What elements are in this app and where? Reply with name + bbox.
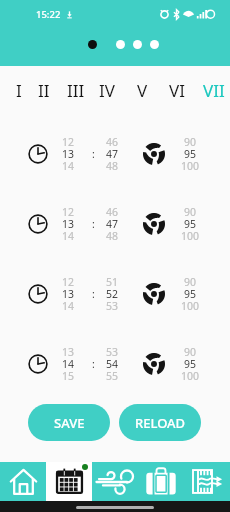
staticText: 14 — [62, 299, 75, 313]
button[interactable]: SAVE — [28, 404, 110, 441]
staticText: 52 — [106, 287, 119, 301]
button[interactable]: Filter — [184, 462, 230, 501]
staticText: II — [38, 79, 50, 102]
staticText: VI — [169, 79, 185, 102]
staticText: 46 — [106, 205, 119, 219]
staticText: 55 — [106, 369, 119, 383]
staticText: RELOAD — [135, 414, 186, 432]
staticText: 90 — [184, 205, 197, 219]
staticText: V — [137, 79, 148, 102]
staticText: SAVE — [54, 414, 85, 432]
staticText: 12 — [62, 275, 75, 289]
staticText: 15:22 — [36, 8, 61, 21]
staticText: 95 — [184, 357, 197, 371]
staticText: 54 — [106, 357, 119, 371]
staticText: : — [92, 357, 95, 371]
staticText: 13 — [62, 345, 75, 359]
staticText: 48 — [106, 159, 119, 173]
staticText: I — [16, 79, 22, 102]
staticText: 48 — [106, 229, 119, 243]
staticText: 12 — [62, 135, 75, 149]
button[interactable]: Home — [0, 462, 46, 501]
staticText: VII — [203, 79, 225, 102]
button[interactable]: Calendar — [46, 462, 92, 501]
staticText: III — [67, 79, 85, 102]
staticText: 95 — [184, 217, 197, 231]
button[interactable]: Air flow — [92, 462, 138, 501]
staticText: 12 — [62, 205, 75, 219]
button[interactable]: RELOAD — [119, 404, 201, 441]
staticText: 13 — [62, 217, 75, 231]
staticText: 53 — [106, 299, 119, 313]
staticText: 100 — [181, 299, 200, 313]
button[interactable]: V — [125, 74, 159, 106]
staticText: 47 — [106, 217, 119, 231]
staticText: 100 — [181, 229, 200, 243]
staticText: 15 — [62, 369, 75, 383]
button[interactable]: 12 — [0, 119, 230, 189]
button[interactable]: III — [60, 74, 91, 106]
button[interactable]: 12 — [0, 189, 230, 259]
staticText: 46 — [106, 135, 119, 149]
button[interactable]: 12 — [0, 259, 230, 329]
button[interactable]: I — [7, 74, 31, 106]
staticText: 53 — [106, 345, 119, 359]
button[interactable]: VII — [198, 74, 230, 106]
button[interactable]: VI — [160, 74, 194, 106]
staticText: IV — [99, 79, 115, 102]
staticText: 100 — [181, 159, 200, 173]
staticText: 90 — [184, 135, 197, 149]
staticText: 90 — [184, 345, 197, 359]
staticText: 51 — [106, 275, 119, 289]
button[interactable]: 13 — [0, 329, 230, 399]
staticText: : — [92, 217, 95, 231]
staticText: 100 — [181, 369, 200, 383]
button[interactable]: II — [29, 74, 59, 106]
staticText: 95 — [184, 147, 197, 161]
button[interactable]: Luggage — [138, 462, 184, 501]
staticText: 14 — [62, 229, 75, 243]
staticText: 13 — [62, 147, 75, 161]
staticText: : — [92, 147, 95, 161]
staticText: 90 — [184, 275, 197, 289]
staticText: : — [92, 287, 95, 301]
staticText: 13 — [62, 287, 75, 301]
staticText: 95 — [184, 287, 197, 301]
staticText: 47 — [106, 147, 119, 161]
staticText: 14 — [62, 159, 75, 173]
button[interactable]: IV — [91, 74, 123, 106]
staticText: 14 — [62, 357, 75, 371]
